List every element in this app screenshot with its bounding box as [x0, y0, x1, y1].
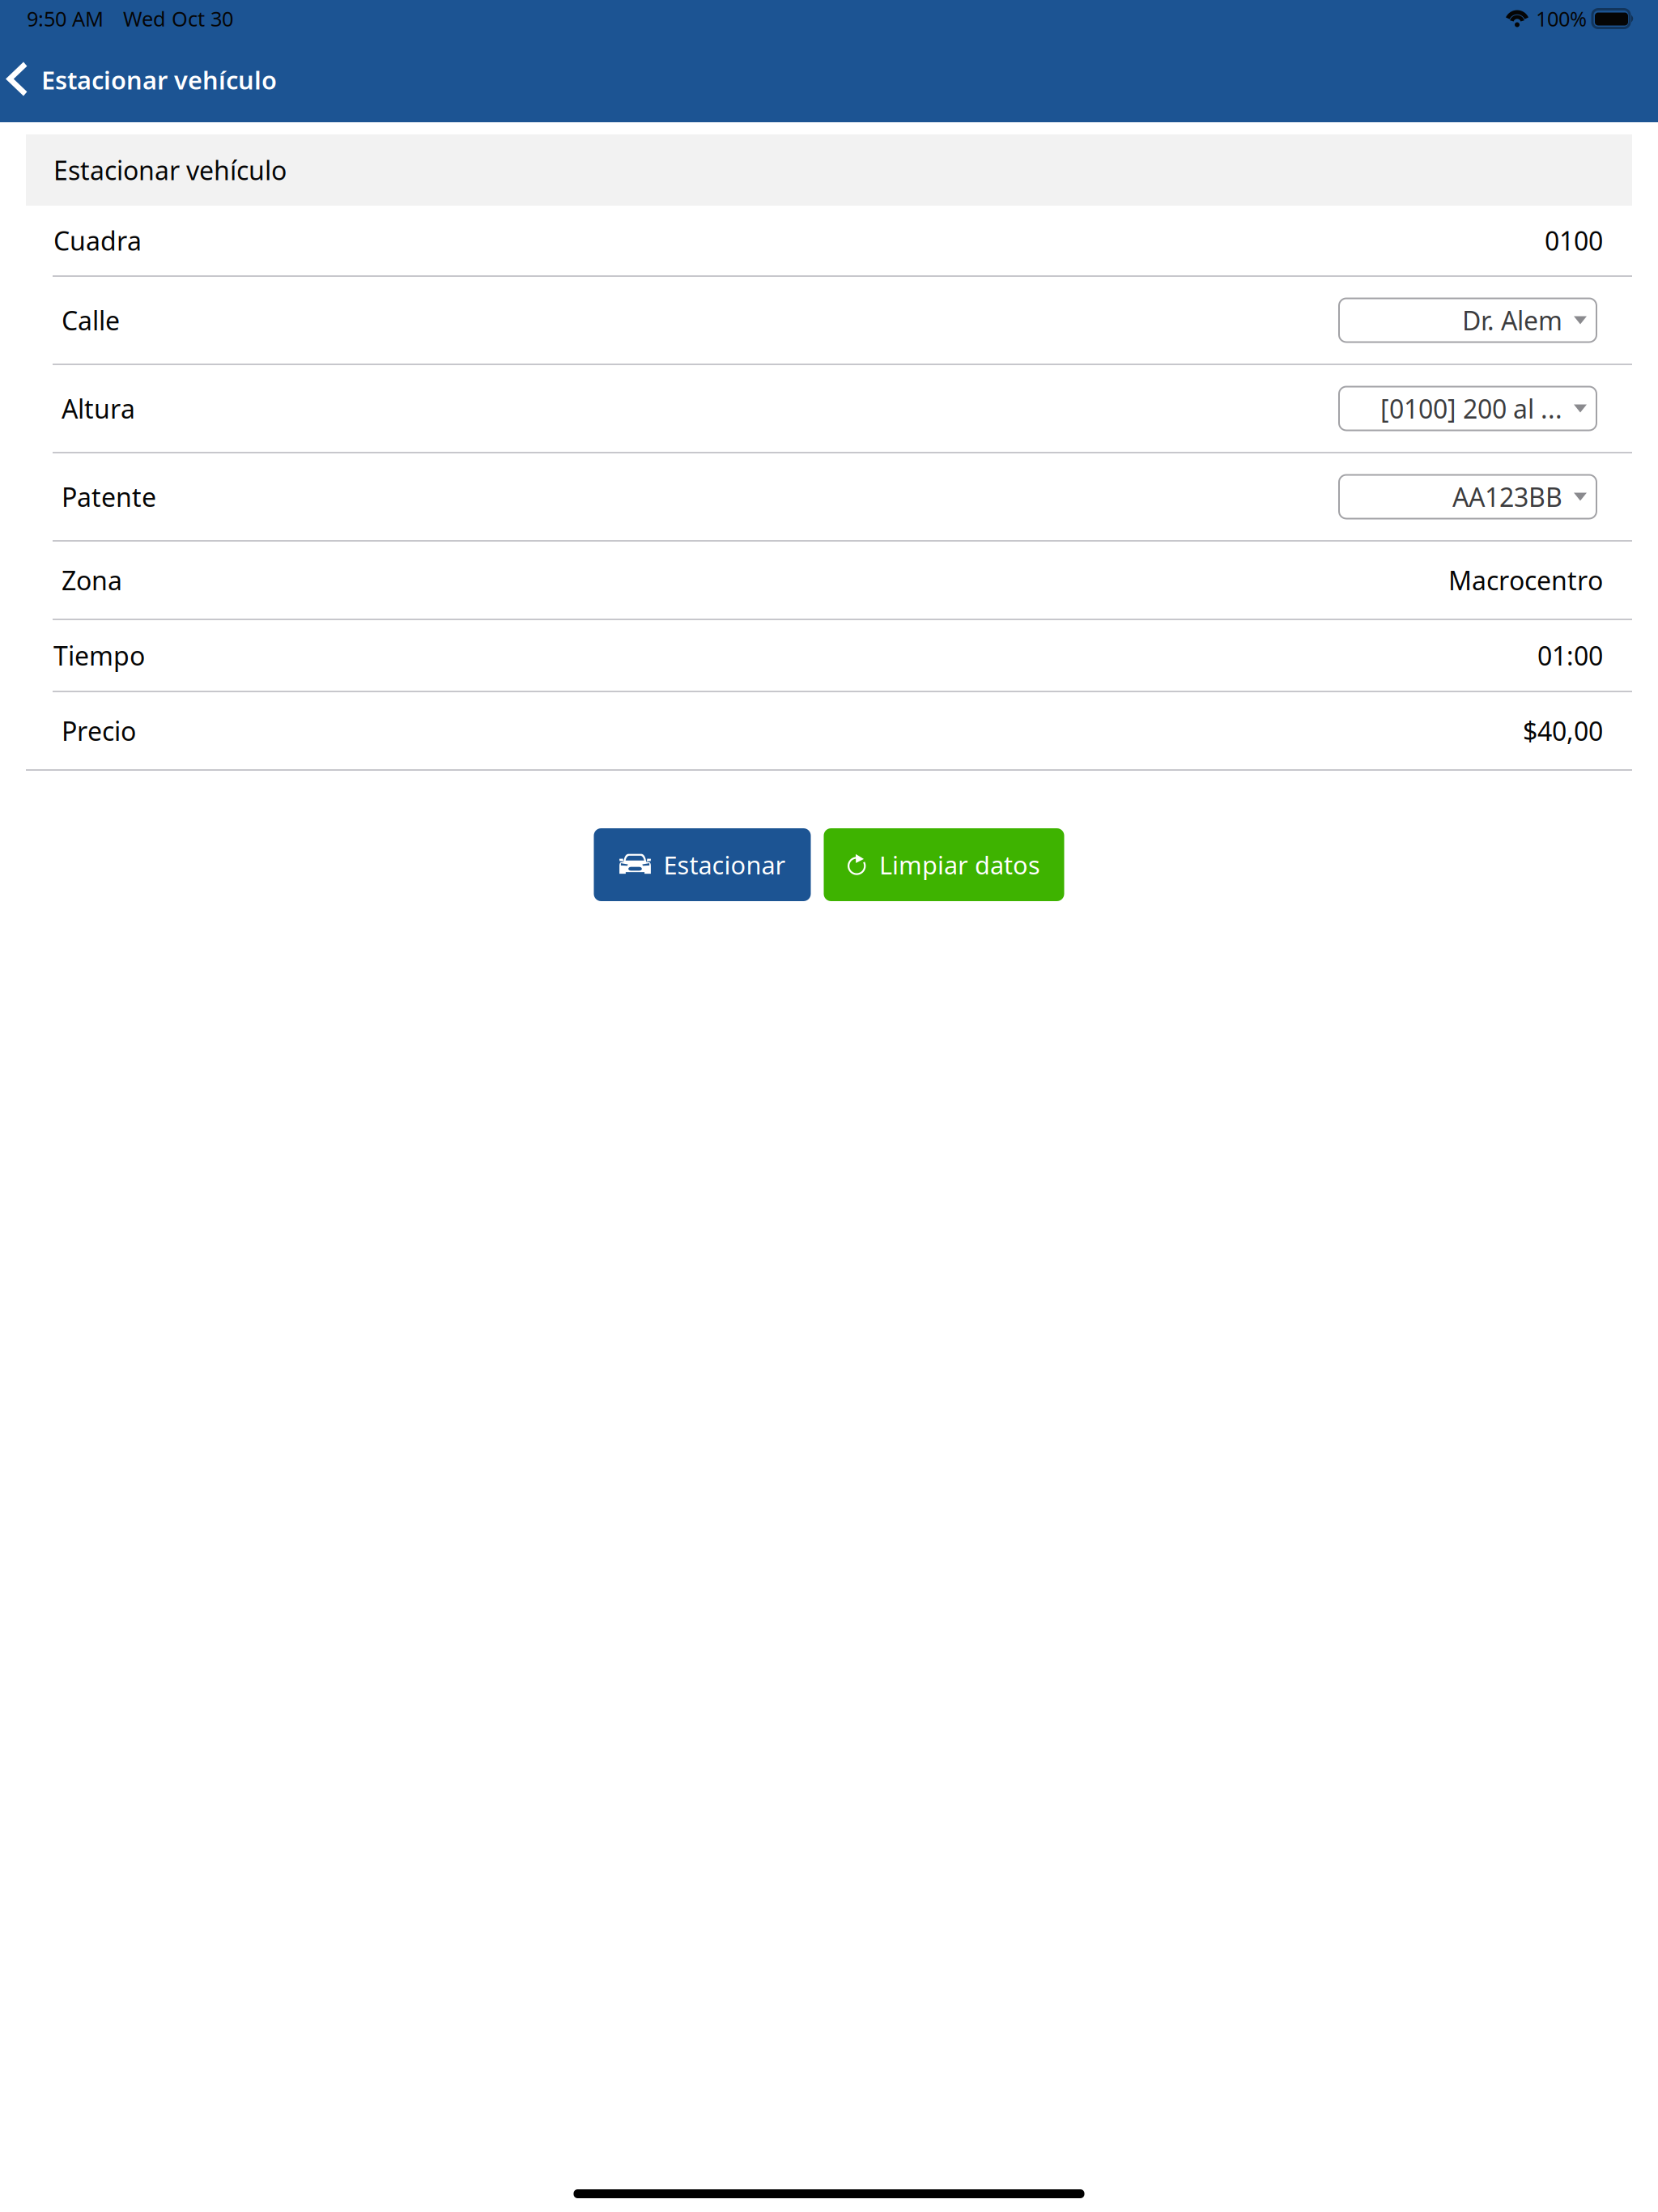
staticText: $40,00 [1523, 714, 1603, 748]
staticText: 01:00 [1537, 638, 1603, 673]
staticText: Zona [62, 563, 122, 597]
staticText: Calle [62, 303, 120, 337]
button[interactable]: Estacionar [594, 828, 811, 901]
button[interactable]: Patente [1339, 475, 1596, 519]
staticText: Macrocentro [1448, 563, 1603, 597]
staticText: 0100 [1545, 223, 1603, 258]
staticText: 100% [1536, 5, 1587, 32]
staticText: Dr. Alem [1462, 303, 1562, 337]
staticText: Patente [62, 480, 156, 514]
button[interactable]: Altura [1339, 387, 1596, 430]
staticText: Wed Oct 30 [123, 5, 233, 32]
staticText: Tiempo [53, 638, 145, 673]
staticText: Precio [62, 714, 136, 748]
staticText: [0100] 200 al ... [1380, 391, 1562, 426]
staticText: Limpiar datos [879, 848, 1040, 881]
staticText: 9:50 AM [27, 5, 104, 32]
staticText: Estacionar [663, 848, 786, 881]
button[interactable]: Limpiar datos [824, 828, 1064, 901]
staticText: AA123BB [1452, 480, 1562, 514]
staticText: Altura [62, 391, 135, 426]
button[interactable]: Calle [1339, 298, 1596, 342]
button[interactable]: Back [0, 37, 296, 122]
staticText: Cuadra [53, 223, 142, 258]
staticText: Estacionar vehículo [41, 63, 277, 96]
staticText: Estacionar vehículo [53, 153, 287, 187]
